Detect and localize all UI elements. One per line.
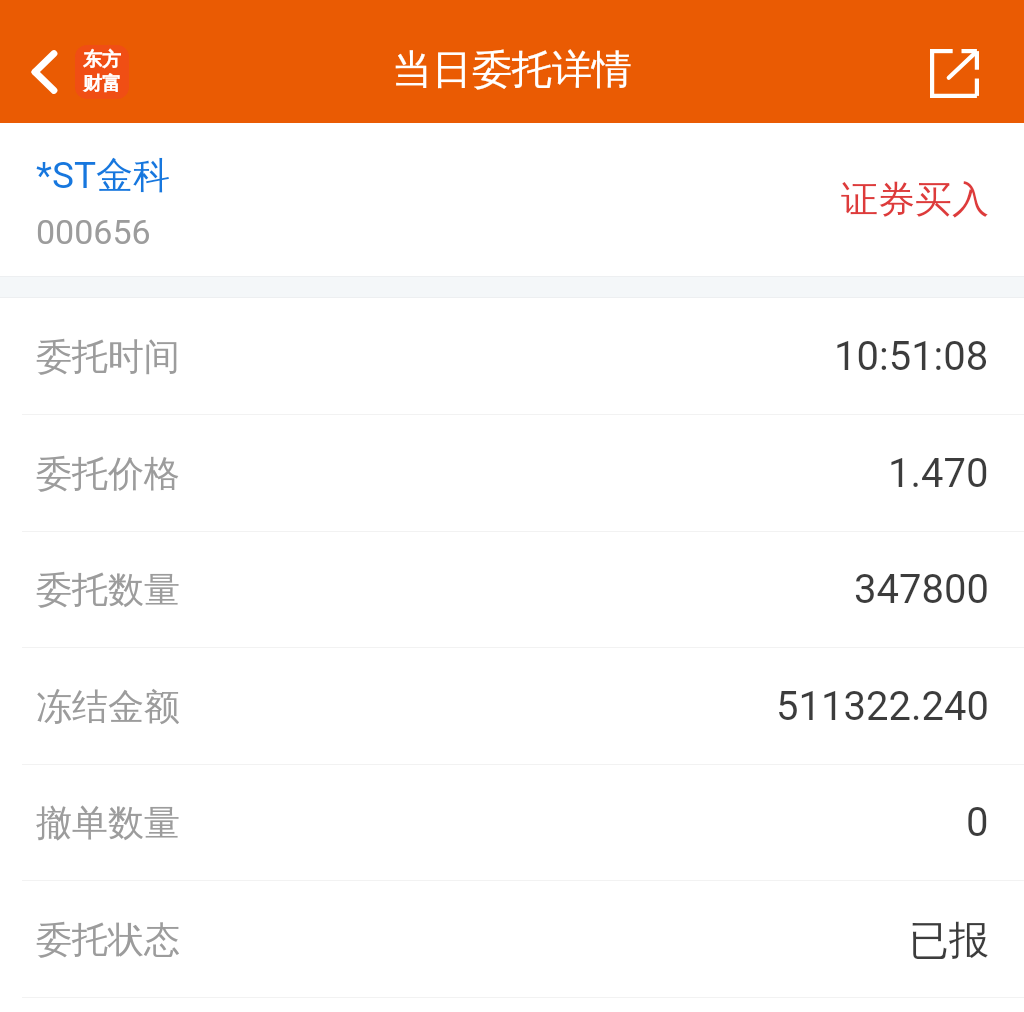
button[interactable]: 冻结金额 <box>0 648 1024 765</box>
staticText: 已报 <box>909 915 989 965</box>
staticText: 财富 <box>83 72 121 96</box>
staticText: 511322.240 <box>776 683 989 730</box>
staticText: 委托价格 <box>36 451 180 496</box>
button[interactable]: 委托数量 <box>0 531 1024 648</box>
staticText: 冻结金额 <box>36 684 180 729</box>
button[interactable]: 委托价格 <box>0 415 1024 532</box>
staticText: 委托数量 <box>36 567 180 612</box>
staticText: 000656 <box>36 212 151 252</box>
button[interactable]: Back <box>20 42 135 102</box>
staticText: 347800 <box>854 566 989 613</box>
staticText: 委托时间 <box>36 334 180 379</box>
button[interactable]: 撤单数量 <box>0 764 1024 881</box>
button[interactable]: 委托时间 <box>0 298 1024 415</box>
staticText: 东方 <box>83 48 121 72</box>
staticText: 证券买入 <box>841 176 989 223</box>
staticText: 10:51:08 <box>834 333 989 380</box>
button[interactable]: Share <box>924 42 984 104</box>
staticText: 0 <box>966 799 989 846</box>
staticText: *ST金科 <box>36 152 170 199</box>
button[interactable]: 委托状态 <box>0 881 1024 998</box>
staticText: 委托状态 <box>36 917 180 962</box>
staticText: 当日委托详情 <box>392 44 632 94</box>
staticText: 撤单数量 <box>36 800 180 845</box>
staticText: 1.470 <box>888 450 989 497</box>
